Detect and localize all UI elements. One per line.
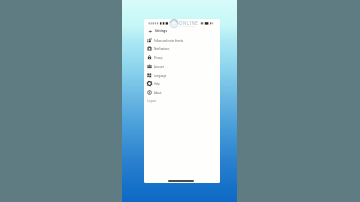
button[interactable]: Language: [144, 71, 220, 80]
button[interactable]: Help: [144, 79, 220, 88]
button[interactable]: Follow and invite friends: [144, 36, 220, 45]
staticText: Account: [154, 65, 164, 69]
button[interactable]: Privacy: [144, 53, 220, 62]
button[interactable]: About: [144, 88, 220, 97]
staticText: Privacy: [154, 56, 163, 60]
staticText: Language: [154, 74, 167, 78]
button[interactable]: Back: [148, 29, 152, 33]
staticText: Settings: [155, 29, 167, 33]
staticText: Follow and invite friends: [154, 39, 184, 43]
staticText: ONLINE: [179, 20, 199, 26]
staticText: TECH SUPPORT: [179, 25, 195, 27]
staticText: Notifications: [154, 47, 170, 51]
button[interactable]: Logout: [147, 99, 157, 103]
button[interactable]: Account: [144, 62, 220, 71]
staticText: Help: [154, 82, 160, 86]
staticText: About: [154, 91, 162, 95]
button[interactable]: Notifications: [144, 44, 220, 53]
